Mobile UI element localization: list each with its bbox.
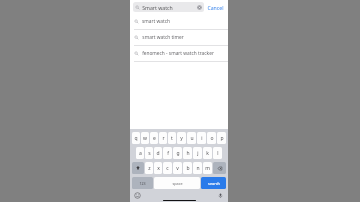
- staticText: j: [197, 150, 199, 157]
- button[interactable]: fenomech - smart watch tracker: [130, 46, 228, 61]
- button[interactable]: a: [136, 147, 144, 159]
- button[interactable]: Backspace: [213, 162, 226, 174]
- button[interactable]: k: [203, 147, 212, 159]
- staticText: k: [206, 150, 209, 157]
- button[interactable]: b: [183, 162, 192, 174]
- staticText: w: [143, 135, 147, 142]
- button[interactable]: g: [173, 147, 182, 159]
- staticText: fenomech - smart watch tracker: [142, 50, 214, 57]
- button[interactable]: space: [154, 177, 200, 189]
- button[interactable]: smart watch timer: [130, 30, 228, 45]
- button[interactable]: c: [163, 162, 172, 174]
- staticText: Cancel: [207, 4, 224, 11]
- staticText: m: [205, 165, 210, 172]
- button[interactable]: u: [187, 132, 196, 144]
- button[interactable]: f: [163, 147, 172, 159]
- staticText: t: [171, 135, 173, 142]
- staticText: y: [180, 135, 183, 142]
- staticText: r: [162, 135, 165, 142]
- button[interactable]: i: [197, 132, 206, 144]
- button[interactable]: m: [203, 162, 212, 174]
- button[interactable]: y: [177, 132, 186, 144]
- button[interactable]: h: [183, 147, 192, 159]
- button[interactable]: Clear text: [197, 5, 202, 10]
- button[interactable]: l: [213, 147, 222, 159]
- staticText: f: [167, 150, 169, 157]
- staticText: i: [201, 135, 203, 142]
- button[interactable]: Emoji: [134, 192, 141, 199]
- button[interactable]: j: [193, 147, 202, 159]
- staticText: g: [176, 150, 180, 157]
- staticText: space: [172, 181, 183, 186]
- staticText: h: [186, 150, 190, 157]
- staticText: c: [166, 165, 169, 172]
- staticText: Smart watch: [142, 4, 173, 11]
- button[interactable]: w: [141, 132, 149, 144]
- staticText: d: [156, 150, 160, 157]
- staticText: 123: [139, 181, 146, 186]
- staticText: x: [157, 165, 160, 172]
- button[interactable]: t: [168, 132, 176, 144]
- button[interactable]: d: [154, 147, 162, 159]
- button[interactable]: p: [217, 132, 226, 144]
- button[interactable]: e: [150, 132, 158, 144]
- staticText: q: [134, 135, 138, 142]
- button[interactable]: Dictate: [217, 192, 224, 199]
- button[interactable]: z: [145, 162, 153, 174]
- button[interactable]: s: [145, 147, 153, 159]
- button[interactable]: v: [173, 162, 182, 174]
- button[interactable]: Smart watch: [133, 2, 204, 12]
- staticText: u: [190, 135, 194, 142]
- button[interactable]: o: [207, 132, 216, 144]
- staticText: smart watch timer: [142, 34, 184, 41]
- button[interactable]: n: [193, 162, 202, 174]
- button[interactable]: Shift: [132, 162, 144, 174]
- button[interactable]: search: [201, 177, 226, 189]
- staticText: smart watch: [142, 18, 170, 25]
- staticText: o: [210, 135, 214, 142]
- button[interactable]: q: [132, 132, 140, 144]
- button[interactable]: Cancel: [206, 4, 225, 11]
- staticText: b: [186, 165, 190, 172]
- staticText: search: [208, 181, 220, 186]
- staticText: e: [153, 135, 156, 142]
- staticText: a: [139, 150, 142, 157]
- staticText: l: [217, 150, 219, 157]
- button[interactable]: r: [159, 132, 167, 144]
- staticText: s: [148, 150, 151, 157]
- staticText: v: [176, 165, 179, 172]
- button[interactable]: x: [154, 162, 162, 174]
- button[interactable]: smart watch: [130, 14, 228, 29]
- staticText: p: [220, 135, 224, 142]
- staticText: n: [196, 165, 200, 172]
- staticText: z: [148, 165, 151, 172]
- button[interactable]: 123: [132, 177, 153, 189]
